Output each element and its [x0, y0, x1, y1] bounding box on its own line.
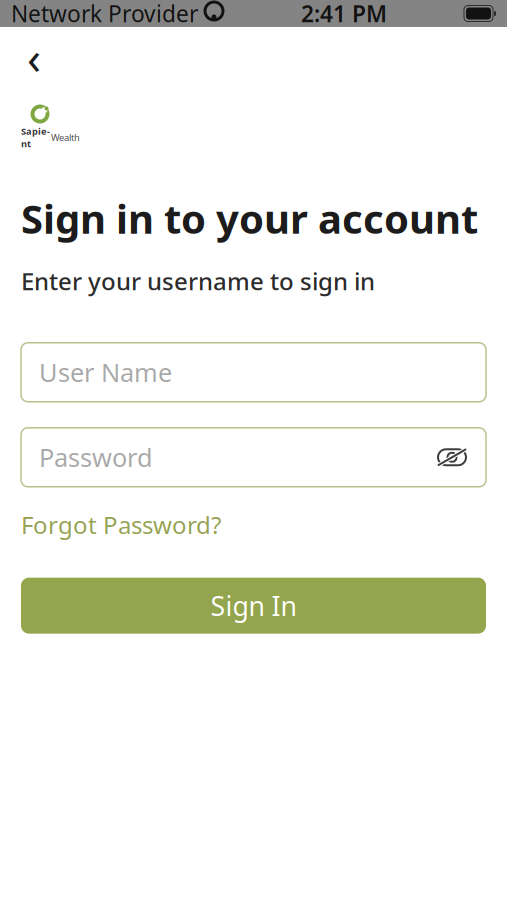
staticText: ‹ [27, 27, 41, 87]
button[interactable]: Sign In [21, 578, 486, 634]
button[interactable]: User Name [21, 343, 486, 402]
button[interactable]: Back [12, 35, 56, 79]
button[interactable]: Password [21, 428, 486, 487]
staticText: Enter your username to sign in [21, 265, 375, 297]
staticText: Sign in to your account [21, 192, 478, 245]
staticText: Wealth [51, 131, 80, 144]
button[interactable]: Forgot Password? [21, 505, 221, 545]
staticText: User Name [39, 355, 172, 389]
staticText: Sign In [210, 588, 296, 623]
staticText: 2:41 PM [301, 0, 387, 28]
staticText: Forgot Password? [21, 509, 221, 541]
staticText: Password [39, 440, 153, 474]
staticText: Sapient [21, 125, 50, 150]
staticText: Network Provider [11, 0, 198, 28]
